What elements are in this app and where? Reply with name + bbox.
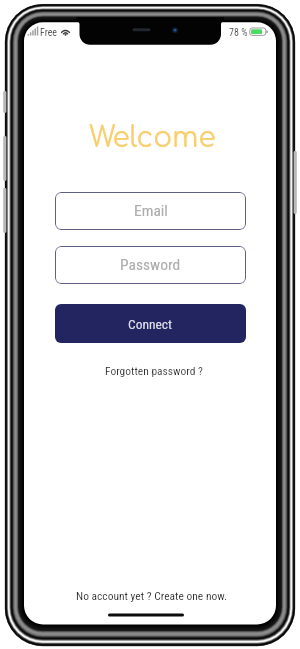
staticText: Email [134,202,168,220]
staticText: Password [120,256,181,274]
button[interactable]: No account yet ? Create one now. [76,589,228,602]
staticText: Free [40,27,58,39]
staticText: Connect [128,316,173,332]
button[interactable]: Connect [55,304,246,343]
button[interactable]: Email [55,192,246,230]
button[interactable]: Password [55,246,246,284]
staticText: Welcome [89,122,216,153]
button[interactable]: Forgotten password ? [105,364,203,377]
staticText: 78 % [229,27,248,39]
staticText: No account yet ? Create one now. [76,589,228,602]
staticText: Forgotten password ? [105,364,203,377]
